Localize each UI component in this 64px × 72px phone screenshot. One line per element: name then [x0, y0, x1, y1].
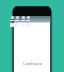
button[interactable]: Category [21, 16, 25, 21]
button[interactable]: Category [10, 16, 14, 21]
button[interactable]: Category [26, 16, 30, 21]
button[interactable]: Cashtopia [23, 61, 42, 66]
button[interactable]: Category [15, 16, 19, 21]
button[interactable]: Card [10, 23, 14, 27]
